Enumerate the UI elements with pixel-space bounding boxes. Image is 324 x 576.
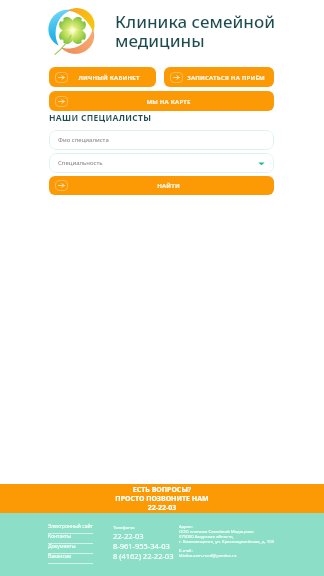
staticText: Фио специалиста (58, 136, 109, 144)
button[interactable]: Вакансии (48, 554, 93, 564)
button[interactable]: ЛИЧНЫЙ КАБИНЕТ (49, 67, 156, 87)
staticText: E-mail: klinika-sem-med@yandex.ru (179, 547, 237, 558)
staticText: Адрес: ООО клиника Семейной Медицины 675… (179, 523, 275, 544)
staticText: МЫ НА КАРТЕ (146, 98, 191, 106)
staticText: 22-22-03 (113, 531, 144, 541)
staticText: Телефоны: (113, 524, 136, 530)
button[interactable]: Электронный сайт (48, 524, 93, 534)
staticText: Электронный сайт (48, 523, 93, 530)
staticText: 8-961-955-34-03 (113, 541, 170, 551)
staticText: Документы (48, 543, 76, 550)
staticText: ЛИЧНЫЙ КАБИНЕТ (78, 74, 140, 82)
staticText: ЗАПИСАТЬСЯ НА ПРИЁМ (187, 74, 265, 82)
staticText: НАЙТИ (157, 182, 180, 190)
staticText: 8 (4162) 22-22-03 (113, 551, 174, 561)
button[interactable]: Документы (48, 544, 93, 554)
other: Выбрать специальность (258, 160, 265, 167)
button[interactable]: МЫ НА КАРТЕ (49, 91, 274, 111)
staticText: Контакты (48, 533, 71, 540)
staticText: Вакансии (48, 553, 72, 560)
staticText: НАШИ СПЕЦИАЛИСТЫ (49, 112, 152, 124)
staticText: Специальность (58, 159, 103, 167)
button[interactable]: НАЙТИ (49, 176, 274, 195)
button[interactable]: Специальность (49, 153, 274, 173)
button[interactable]: Контакты (48, 534, 93, 544)
staticText: Клиника семейной медицины (115, 10, 275, 52)
staticText: ЕСТЬ ВОПРОСЫ? ПРОСТО ПОЗВОНИТЕ НАМ 22-22… (115, 485, 209, 512)
button[interactable]: ЗАПИСАТЬСЯ НА ПРИЁМ (164, 67, 274, 87)
button[interactable]: Фио специалиста (49, 130, 274, 150)
